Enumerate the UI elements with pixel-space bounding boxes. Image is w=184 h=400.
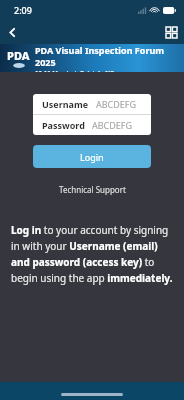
staticText: Password xyxy=(42,119,85,131)
staticText: Username xyxy=(42,98,89,110)
button[interactable]: Login xyxy=(33,145,151,168)
button[interactable]: Scan QR code xyxy=(158,20,184,44)
staticText: 10-11 March | Raleigh, NC xyxy=(35,69,114,72)
staticText: 2:09 xyxy=(14,4,32,16)
staticText: ABCDEFG xyxy=(92,119,133,131)
button[interactable]: Password xyxy=(33,115,151,135)
button[interactable]: Technical Support xyxy=(53,182,132,197)
staticText: ABCDEFG xyxy=(96,98,137,110)
staticText: Log in to your account by signing in wit… xyxy=(11,223,173,284)
staticText: Login xyxy=(80,151,104,163)
staticText: Technical Support xyxy=(59,184,126,195)
staticText: PDA xyxy=(7,48,30,63)
staticText: PDA Visual Inspection Forum 2025 xyxy=(35,44,179,68)
button[interactable]: Back xyxy=(0,20,24,44)
button[interactable]: Username xyxy=(33,94,151,114)
